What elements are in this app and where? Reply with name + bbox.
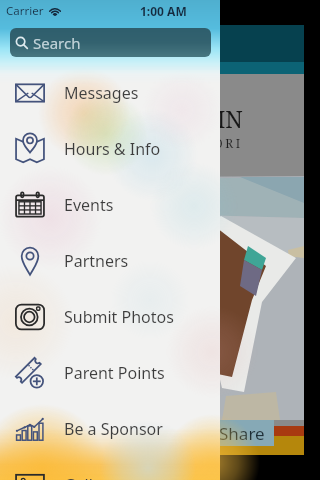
staticText: 1:00 AM bbox=[140, 3, 187, 19]
staticText: MARIN bbox=[164, 103, 243, 134]
staticText: Gallery bbox=[64, 474, 117, 480]
staticText: Parent Points bbox=[64, 362, 165, 384]
staticText: Messages bbox=[64, 82, 139, 104]
button[interactable]: Search bbox=[10, 28, 211, 57]
staticText: Be a Sponsor bbox=[64, 418, 163, 440]
button[interactable]: Messages bbox=[0, 65, 220, 121]
staticText: Events bbox=[64, 194, 114, 216]
button[interactable]: Events bbox=[0, 177, 220, 233]
staticText: Hours & Info bbox=[64, 138, 161, 160]
button[interactable]: Gallery bbox=[0, 457, 220, 480]
button[interactable]: Be a Sponsor bbox=[0, 401, 220, 457]
staticText: Share bbox=[219, 422, 265, 445]
staticText: Search bbox=[33, 33, 81, 53]
staticText: Carrier bbox=[6, 3, 44, 19]
button[interactable]: Share bbox=[46, 420, 274, 446]
staticText: Partners bbox=[64, 250, 129, 272]
button[interactable]: Parent Points bbox=[0, 345, 220, 401]
button[interactable]: Partners bbox=[0, 233, 220, 289]
button[interactable]: Submit Photos bbox=[0, 289, 220, 345]
staticText: Submit Photos bbox=[64, 306, 174, 328]
other: Wi-Fi bbox=[49, 7, 61, 16]
button[interactable]: Hours & Info bbox=[0, 121, 220, 177]
staticText: EMPORI bbox=[180, 135, 243, 151]
